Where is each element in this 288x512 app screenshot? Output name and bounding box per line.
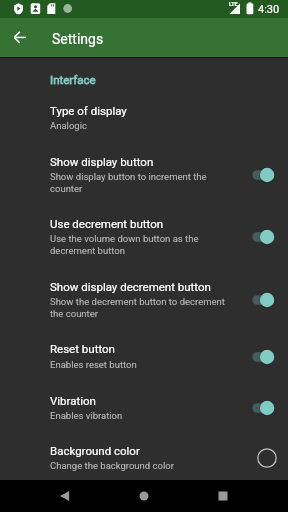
button[interactable]: Show display button toggle [252, 163, 282, 187]
button[interactable]: Reset button toggle [252, 345, 282, 369]
staticText: Reset button [50, 342, 115, 355]
staticText: Show display button to increment the [50, 171, 207, 182]
staticText: Analogic [50, 120, 87, 131]
staticText: Change the background color [50, 460, 174, 471]
button[interactable]: Reset button [0, 334, 288, 370]
staticText: Show display decrement button [50, 280, 211, 293]
button[interactable]: Use decrement button [0, 209, 288, 256]
staticText: Interface [50, 73, 96, 86]
button[interactable]: Vibration toggle [252, 396, 282, 420]
staticText: Vibration [50, 394, 96, 407]
staticText: decrement button [50, 245, 125, 256]
staticText: 4:30 [258, 3, 280, 16]
staticText: Use decrement button [50, 217, 164, 230]
button[interactable]: Background color [0, 436, 288, 472]
button[interactable]: Use decrement button toggle [252, 225, 282, 249]
staticText: Enables reset button [50, 359, 137, 370]
staticText: Show the decrement button to decrement [50, 296, 225, 307]
staticText: Enables vibration [50, 410, 123, 421]
button[interactable]: Pick background color [255, 446, 279, 470]
staticText: counter [50, 183, 83, 194]
button[interactable]: Recent apps [202, 480, 244, 512]
staticText: Use the volume down button as the [50, 233, 199, 244]
button[interactable]: Vibration [0, 386, 288, 422]
button[interactable]: Home [123, 480, 165, 512]
staticText: LTE [229, 1, 238, 7]
button[interactable]: Show display decrement button [0, 272, 288, 319]
staticText: Show display button [50, 155, 154, 168]
button[interactable]: Show display button [0, 147, 288, 194]
staticText: Type of display [50, 104, 127, 117]
staticText: Settings [52, 31, 104, 47]
button[interactable]: Type of display [0, 96, 288, 132]
staticText: the counter [50, 308, 98, 319]
button[interactable]: Back [44, 480, 86, 512]
button[interactable]: Show display decrement button toggle [252, 288, 282, 312]
staticText: Background color [50, 444, 140, 457]
button[interactable]: Navigate up [8, 18, 32, 57]
